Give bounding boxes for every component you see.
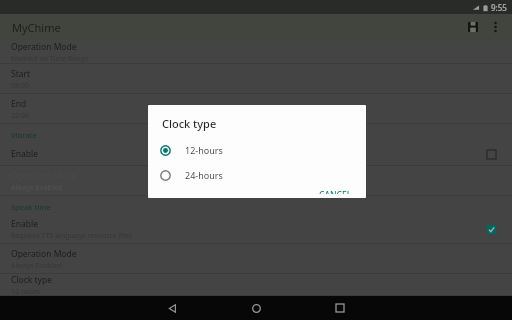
button[interactable]: Recent apps	[312, 296, 368, 320]
button[interactable]: Operation Mode	[0, 166, 512, 196]
staticText: Clock type	[11, 274, 52, 286]
button[interactable]: More options	[484, 16, 506, 38]
staticText: 12-hours	[11, 287, 41, 296]
staticText: 12-hours	[185, 144, 223, 156]
staticText: CANCEL	[319, 189, 352, 194]
staticText: Speak time	[11, 202, 51, 212]
staticText: Vibrate	[11, 130, 37, 140]
staticText: 24-hours	[185, 169, 223, 181]
staticText: Always Enabled	[11, 261, 62, 271]
staticText: Start	[11, 68, 31, 80]
button[interactable]: Save	[462, 16, 484, 38]
staticText: End	[11, 98, 27, 110]
button[interactable]: 24-hours	[148, 165, 366, 185]
staticText: Operation Mode	[11, 248, 77, 260]
button[interactable]: Unchecked	[482, 145, 500, 163]
button[interactable]: 12-hours	[148, 140, 366, 160]
staticText: Clock type	[162, 116, 217, 131]
staticText: 9:55	[491, 2, 507, 13]
button[interactable]: CANCEL	[313, 185, 358, 198]
button[interactable]: Home	[228, 296, 284, 320]
button[interactable]: Checked	[482, 220, 500, 238]
staticText: MyChime	[12, 20, 61, 35]
button[interactable]: Back	[144, 296, 200, 320]
staticText: Enable	[11, 218, 38, 230]
button[interactable]: End	[0, 94, 512, 124]
staticText: Requires TTS language resource files	[11, 231, 132, 241]
button[interactable]: Enable	[0, 214, 512, 244]
staticText: Enable	[11, 148, 38, 160]
button[interactable]: Enable	[0, 142, 512, 166]
staticText: Enabled on Time Range	[11, 54, 89, 64]
staticText: 22:00	[11, 111, 29, 121]
staticText: Operation Mode	[11, 41, 77, 53]
staticText: 08:00	[11, 81, 29, 91]
staticText: Always Enabled	[11, 183, 62, 193]
button[interactable]: Operation Mode	[0, 244, 512, 274]
button[interactable]: Operation Mode	[0, 40, 512, 64]
